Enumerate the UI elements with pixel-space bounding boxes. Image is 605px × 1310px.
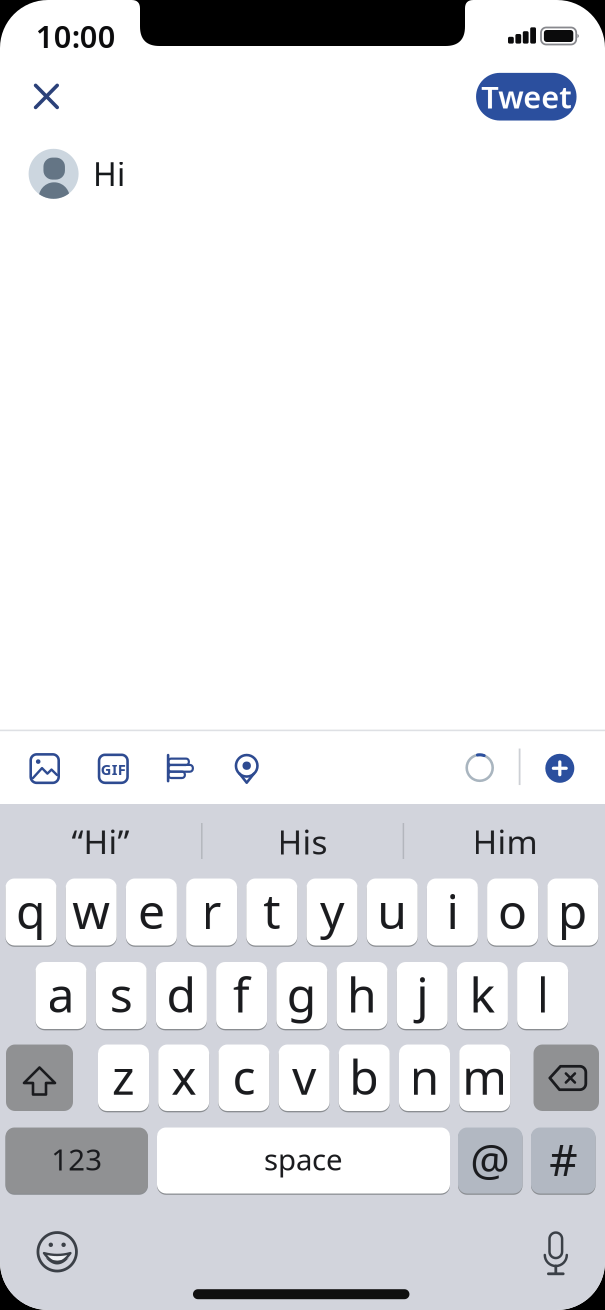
staticText: h <box>347 962 377 1026</box>
button[interactable]: t <box>246 877 297 946</box>
staticText: l <box>537 962 549 1026</box>
staticText: j <box>416 962 428 1026</box>
staticText: d <box>166 962 196 1026</box>
button[interactable]: k <box>457 961 508 1030</box>
staticText: space <box>264 1139 343 1178</box>
staticText: c <box>232 1044 255 1108</box>
button[interactable]: @ <box>458 1126 522 1194</box>
button[interactable]: c <box>218 1043 269 1112</box>
button[interactable]: Dictation <box>534 1230 578 1274</box>
staticText: y <box>320 879 344 942</box>
staticText: e <box>138 879 165 942</box>
staticText: “Hi” <box>71 819 129 864</box>
staticText: m <box>462 1044 507 1108</box>
staticText: x <box>171 1044 196 1108</box>
staticText: Tweet <box>481 76 571 117</box>
staticText: a <box>47 962 74 1026</box>
button[interactable]: Tweet <box>476 73 576 120</box>
staticText: v <box>292 1044 316 1108</box>
staticText: i <box>446 879 458 942</box>
staticText: f <box>233 962 250 1026</box>
button[interactable]: r <box>186 877 237 946</box>
button[interactable]: i <box>427 877 478 946</box>
button[interactable]: z <box>98 1043 149 1112</box>
staticText: r <box>202 879 222 942</box>
button[interactable]: w <box>66 877 117 946</box>
staticText: b <box>349 1044 379 1108</box>
staticText: o <box>498 879 527 942</box>
button[interactable]: u <box>367 877 418 946</box>
staticText: His <box>277 819 327 864</box>
button[interactable]: # <box>531 1126 595 1194</box>
button[interactable]: h <box>336 961 387 1030</box>
button[interactable]: Add photo <box>23 747 67 791</box>
button[interactable]: j <box>397 961 448 1030</box>
button[interactable]: Add poll <box>158 746 202 790</box>
button[interactable]: Him <box>415 809 595 873</box>
staticText: q <box>16 879 46 942</box>
button[interactable]: g <box>276 961 327 1030</box>
staticText: g <box>287 962 317 1026</box>
button[interactable]: s <box>96 961 147 1030</box>
button[interactable]: d <box>156 961 207 1030</box>
staticText: s <box>110 962 133 1026</box>
staticText: # <box>549 1130 577 1188</box>
button[interactable]: m <box>459 1043 510 1112</box>
staticText: Him <box>472 819 537 864</box>
staticText: Hi <box>93 153 125 195</box>
button[interactable]: 123 <box>5 1126 148 1194</box>
button[interactable]: space <box>157 1126 450 1194</box>
button[interactable]: Add GIF <box>91 747 135 791</box>
button[interactable]: Shift <box>6 1044 73 1111</box>
button[interactable]: x <box>158 1043 209 1112</box>
staticText: k <box>469 962 495 1026</box>
staticText: GIF <box>101 759 126 779</box>
staticText: 123 <box>51 1139 102 1178</box>
button[interactable]: a <box>35 961 86 1030</box>
button[interactable]: l <box>517 961 568 1030</box>
button[interactable]: Add location <box>225 746 269 790</box>
button[interactable]: e <box>126 877 177 946</box>
button[interactable]: Add another Tweet <box>545 754 574 783</box>
staticText: u <box>377 879 407 942</box>
button[interactable]: Close <box>28 78 64 114</box>
button[interactable]: “Hi” <box>10 809 190 873</box>
button[interactable]: Delete <box>533 1044 599 1111</box>
staticText: n <box>409 1044 439 1108</box>
button[interactable]: His <box>212 809 392 873</box>
button[interactable]: n <box>399 1043 450 1112</box>
staticText: 10:00 <box>36 16 116 56</box>
staticText: t <box>263 879 280 942</box>
button[interactable]: q <box>5 877 56 946</box>
button[interactable]: Emoji <box>35 1230 79 1274</box>
staticText: z <box>112 1044 135 1108</box>
button[interactable]: o <box>487 877 538 946</box>
button[interactable]: v <box>279 1043 330 1112</box>
staticText: w <box>72 879 110 942</box>
button[interactable]: p <box>547 877 598 946</box>
staticText: p <box>558 879 588 942</box>
button[interactable]: b <box>339 1043 390 1112</box>
button[interactable]: y <box>306 877 357 946</box>
button[interactable]: f <box>216 961 267 1030</box>
staticText: @ <box>470 1130 510 1188</box>
